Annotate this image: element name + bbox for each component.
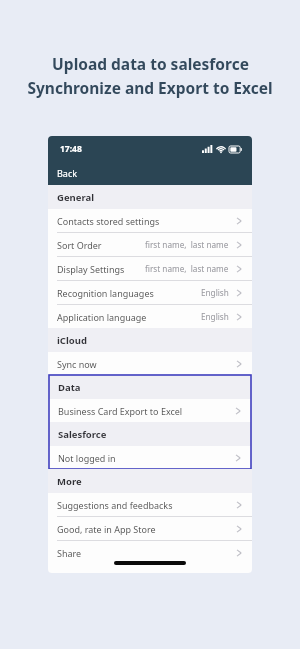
staticText: General	[57, 191, 94, 204]
staticText: Contacts stored settings	[57, 215, 160, 227]
button[interactable]: Share	[48, 541, 252, 564]
staticText: English	[201, 311, 229, 322]
staticText: Salesforce	[58, 428, 107, 441]
button[interactable]: Sync now	[48, 352, 252, 375]
staticText: 17:48	[60, 143, 82, 155]
staticText: Application language	[57, 311, 147, 323]
staticText: Upload data to salesforce	[52, 53, 249, 74]
staticText: Suggestions and feedbacks	[57, 499, 173, 511]
staticText: More	[57, 475, 82, 488]
staticText: Synchronize and Export to Excel	[27, 77, 273, 98]
staticText: Sort Order	[57, 239, 102, 251]
staticText: Back	[57, 167, 78, 179]
staticText: English	[201, 287, 229, 298]
button[interactable]: Contacts stored settings	[48, 209, 252, 232]
button[interactable]: Recognition languages	[48, 281, 252, 304]
staticText: Business Card Export to Excel	[58, 405, 183, 417]
button[interactable]: Good, rate in App Store	[48, 517, 252, 540]
staticText: Good, rate in App Store	[57, 523, 156, 535]
button[interactable]: Sort Order	[48, 233, 252, 256]
staticText: Not logged in	[58, 452, 116, 464]
button[interactable]: Business Card Export to Excel	[49, 399, 251, 422]
staticText: Share	[57, 547, 82, 559]
staticText: first name, last name	[145, 263, 229, 274]
button[interactable]: Display Settings	[48, 257, 252, 280]
staticText: Display Settings	[57, 263, 125, 275]
staticText: iCloud	[57, 334, 87, 347]
staticText: Sync now	[57, 358, 97, 370]
button[interactable]: Not logged in	[49, 446, 251, 469]
button[interactable]: Application language	[48, 305, 252, 328]
staticText: Recognition languages	[57, 287, 154, 299]
button[interactable]: Suggestions and feedbacks	[48, 493, 252, 516]
staticText: first name, last name	[145, 239, 229, 250]
button[interactable]: Back	[48, 164, 87, 182]
staticText: Data	[58, 381, 81, 394]
